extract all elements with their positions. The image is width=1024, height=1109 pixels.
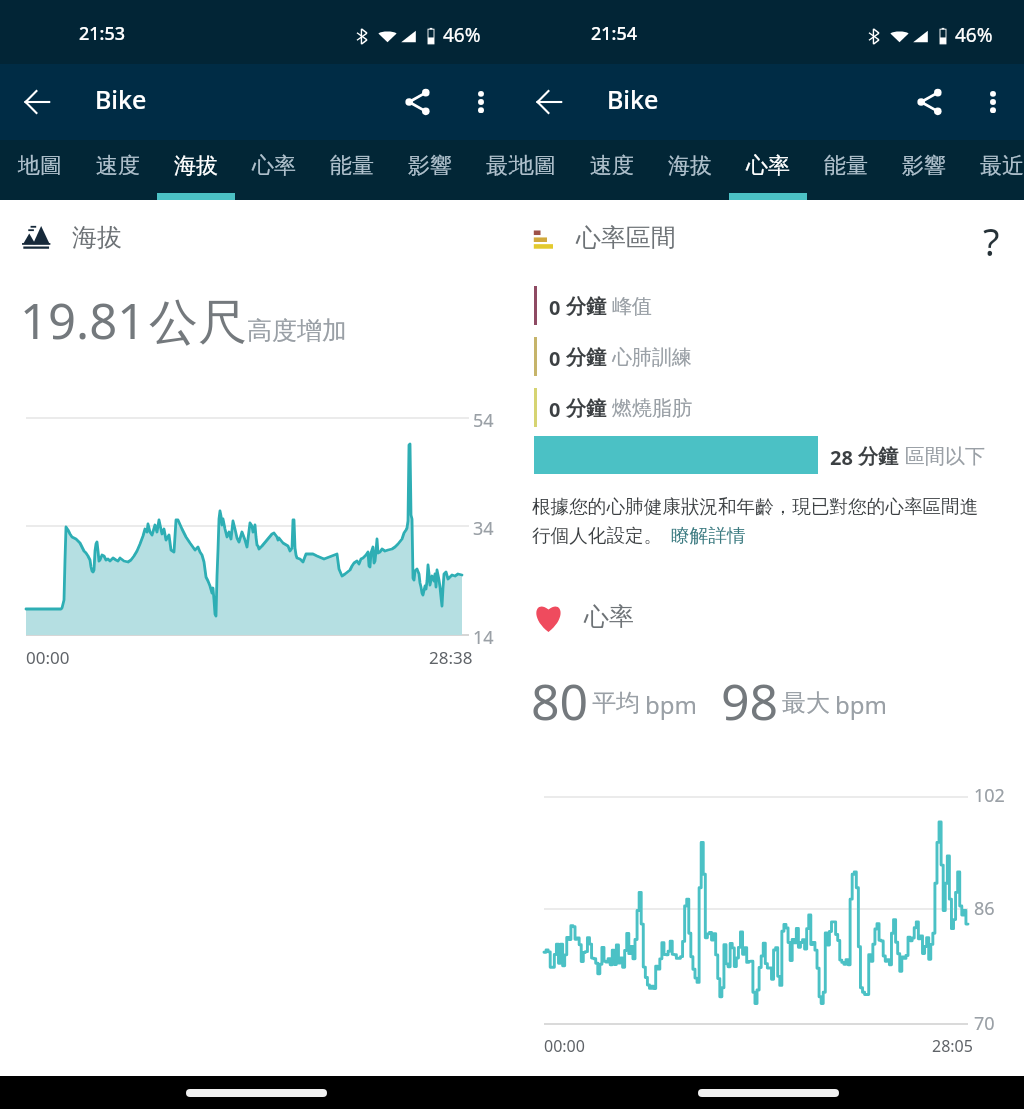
staticText: 86 bbox=[974, 896, 995, 921]
staticText: 影響 bbox=[902, 152, 946, 180]
staticText: 速度 bbox=[590, 152, 634, 180]
button[interactable]: 影響 bbox=[885, 140, 963, 200]
staticText: 區間以下 bbox=[905, 444, 985, 469]
staticText: 70 bbox=[974, 1011, 995, 1036]
staticText: 影響 bbox=[408, 152, 452, 180]
staticText: 行個人化設定。 bbox=[532, 524, 663, 547]
staticText: 公尺 bbox=[149, 292, 247, 354]
staticText: 峰值 bbox=[612, 294, 652, 319]
staticText: 46% bbox=[955, 22, 993, 48]
button[interactable]: 影響 bbox=[391, 140, 469, 200]
staticText: 平均 bbox=[592, 688, 640, 718]
staticText: 能量 bbox=[824, 152, 868, 180]
staticText: 00:00 bbox=[26, 646, 70, 669]
button[interactable]: 海拔 bbox=[651, 140, 729, 200]
staticText: 0 bbox=[549, 396, 561, 423]
staticText: 80 bbox=[531, 667, 589, 735]
button[interactable]: Help bbox=[960, 212, 1008, 260]
staticText: 46% bbox=[443, 22, 481, 48]
staticText: 速度 bbox=[96, 152, 140, 180]
button[interactable]: 最近 bbox=[963, 140, 1024, 200]
button[interactable]: More options bbox=[969, 78, 1017, 126]
staticText: 海拔 bbox=[174, 152, 218, 180]
button[interactable]: 速度 bbox=[573, 140, 651, 200]
staticText: 心率 bbox=[252, 152, 296, 180]
staticText: Bike bbox=[95, 82, 147, 116]
button[interactable]: 速度 bbox=[79, 140, 157, 200]
staticText: 地圖 bbox=[512, 152, 556, 180]
button[interactable]: 能量 bbox=[313, 140, 391, 200]
staticText: Bike bbox=[607, 82, 659, 116]
staticText: 34 bbox=[473, 516, 494, 541]
staticText: 心率區間 bbox=[576, 222, 676, 253]
button[interactable]: 心率 bbox=[235, 140, 313, 200]
staticText: 燃燒脂肪 bbox=[612, 396, 692, 421]
staticText: 海拔 bbox=[668, 152, 712, 180]
button[interactable]: 心率 bbox=[729, 140, 807, 200]
staticText: 0 bbox=[549, 345, 561, 372]
staticText: 28:38 bbox=[429, 646, 473, 669]
staticText: bpm bbox=[645, 688, 697, 721]
staticText: ? bbox=[983, 215, 1000, 263]
staticText: 102 bbox=[974, 783, 1005, 808]
staticText: 心率 bbox=[584, 601, 634, 632]
button[interactable]: 地圖 bbox=[1, 140, 79, 200]
staticText: 能量 bbox=[330, 152, 374, 180]
staticText: 分鐘 bbox=[566, 396, 606, 421]
staticText: 最近 bbox=[486, 152, 530, 180]
button[interactable]: 能量 bbox=[807, 140, 885, 200]
staticText: 28:05 bbox=[932, 1035, 973, 1057]
staticText: 心率 bbox=[746, 152, 790, 180]
staticText: 54 bbox=[473, 408, 494, 433]
staticText: 地圖 bbox=[18, 152, 62, 180]
button[interactable]: More options bbox=[457, 78, 505, 126]
staticText: 分鐘 bbox=[566, 294, 606, 319]
staticText: 高度增加 bbox=[247, 315, 347, 346]
staticText: 最近 bbox=[980, 152, 1024, 180]
staticText: 28 bbox=[830, 444, 853, 471]
staticText: 14 bbox=[473, 625, 494, 650]
button[interactable]: 最近 bbox=[469, 140, 547, 200]
staticText: 根據您的心肺健康狀況和年齡，現已對您的心率區間進 bbox=[532, 495, 979, 518]
staticText: 心肺訓練 bbox=[612, 345, 692, 370]
button[interactable]: Back bbox=[525, 78, 573, 126]
staticText: bpm bbox=[835, 688, 887, 721]
staticText: 19.81 bbox=[20, 287, 146, 354]
staticText: 最大 bbox=[782, 688, 830, 718]
button[interactable]: 海拔 bbox=[157, 140, 235, 200]
button[interactable]: 地圖 bbox=[495, 140, 573, 200]
staticText: 00:00 bbox=[544, 1035, 585, 1057]
button[interactable]: Share bbox=[906, 78, 954, 126]
staticText: 分鐘 bbox=[858, 444, 898, 469]
staticText: 0 bbox=[549, 294, 561, 321]
staticText: 21:53 bbox=[79, 21, 126, 46]
button[interactable]: 瞭解詳情 bbox=[671, 524, 746, 547]
staticText: 98 bbox=[721, 667, 779, 735]
button[interactable]: Share bbox=[394, 78, 442, 126]
staticText: 分鐘 bbox=[566, 345, 606, 370]
staticText: 海拔 bbox=[72, 222, 122, 253]
button[interactable]: Back bbox=[13, 78, 61, 126]
staticText: 21:54 bbox=[591, 21, 638, 46]
